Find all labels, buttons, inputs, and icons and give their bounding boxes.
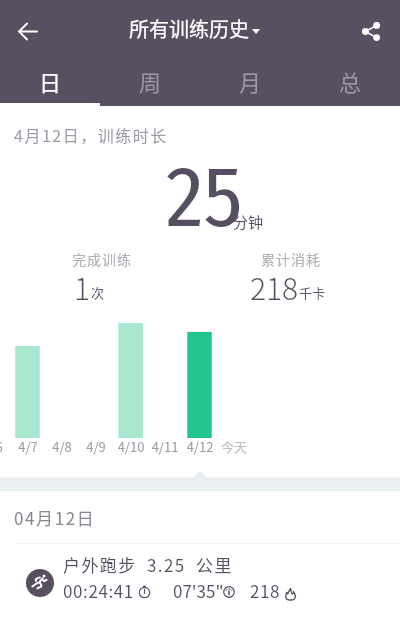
staticText: 月	[239, 65, 262, 97]
staticText: 4/10	[101, 437, 161, 456]
staticText: 4/12	[170, 437, 230, 456]
staticText: 分钟	[233, 211, 264, 233]
staticText: 今天	[204, 437, 264, 456]
staticText: 总	[339, 65, 362, 97]
button[interactable]: 总	[300, 56, 400, 105]
staticText: 千卡	[299, 283, 326, 302]
staticText: 4月12日，训练时长	[14, 123, 168, 146]
button[interactable]: Share	[349, 9, 393, 53]
staticText: 次	[91, 283, 105, 302]
button[interactable]: 月	[200, 56, 300, 105]
staticText: 日	[39, 65, 62, 97]
staticText: 4/8	[32, 437, 92, 456]
button[interactable]: 日	[0, 56, 100, 105]
staticText: 25	[166, 147, 243, 249]
staticText: 04月12日	[14, 505, 96, 530]
staticText: 所有训练历史	[129, 14, 249, 43]
staticText: 4/7	[0, 437, 58, 456]
button[interactable]: 所有训练历史	[129, 14, 260, 43]
button[interactable]: 户外跑步 3.25 公里	[0, 544, 400, 608]
staticText: 4/11	[135, 437, 195, 456]
staticText: 周	[139, 65, 162, 97]
staticText: 完成训练	[72, 249, 132, 269]
staticText: 218	[250, 265, 299, 308]
button[interactable]: 周	[100, 56, 200, 105]
staticText: 1	[74, 265, 91, 308]
button[interactable]: Back	[6, 9, 50, 53]
staticText: 218	[250, 578, 281, 603]
staticText: 4/9	[66, 437, 126, 456]
staticText: 累计消耗	[261, 249, 321, 269]
staticText: 户外跑步 3.25 公里	[63, 552, 233, 577]
staticText: 4/6	[0, 437, 23, 456]
staticText: 07'35"	[173, 578, 224, 603]
staticText: 00:24:41	[63, 578, 134, 603]
